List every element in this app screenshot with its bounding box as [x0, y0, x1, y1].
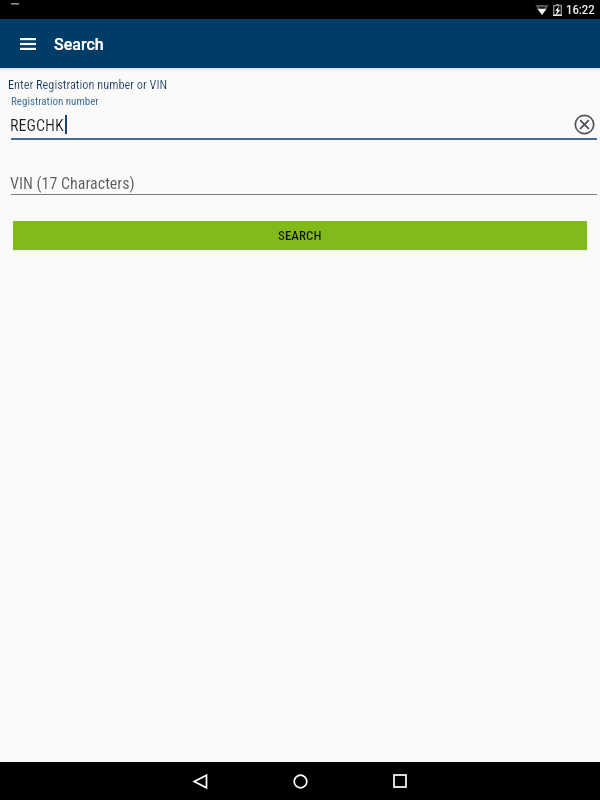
button[interactable]: Clear text — [571, 111, 597, 137]
staticText: Search — [54, 35, 104, 54]
staticText: SEARCH — [278, 228, 322, 243]
button[interactable]: Home — [270, 762, 330, 800]
button[interactable]: Back — [170, 762, 230, 800]
staticText: 16:22 — [566, 2, 595, 17]
button[interactable]: Open navigation menu — [0, 19, 52, 68]
staticText: Enter Registration number or VIN — [8, 78, 168, 92]
button[interactable]: SEARCH — [13, 221, 587, 250]
staticText: VIN (17 Characters) — [10, 174, 135, 193]
staticText: Registration number — [11, 95, 99, 108]
staticText: REGCHK — [10, 116, 64, 135]
button[interactable]: Recent apps — [370, 762, 430, 800]
